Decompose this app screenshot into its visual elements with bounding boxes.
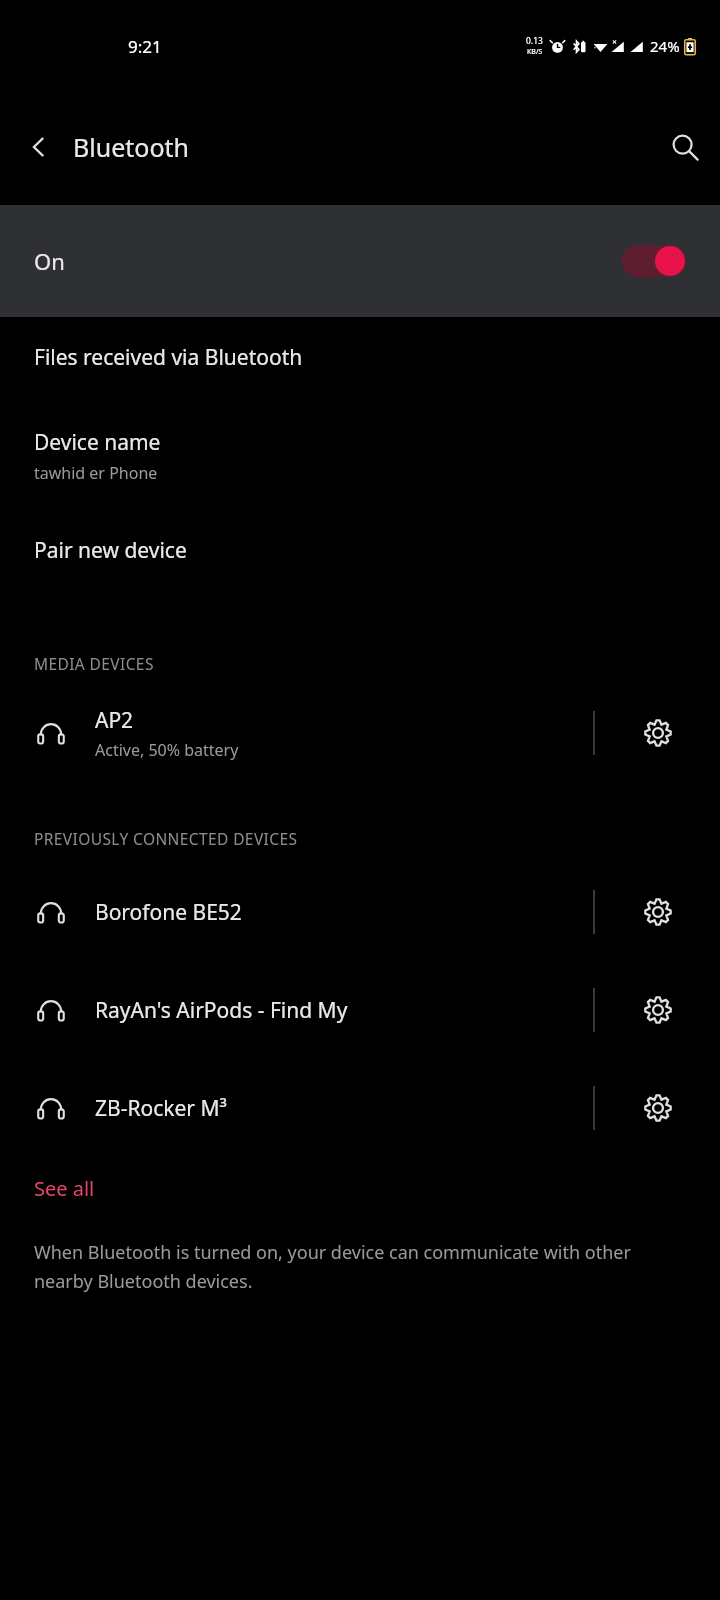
button[interactable]: ZB-Rocker M³ bbox=[0, 1071, 593, 1145]
staticText: AP2 bbox=[95, 706, 134, 735]
button[interactable]: Settings for RayAn's AirPods - Find My bbox=[595, 973, 720, 1047]
button[interactable]: Search bbox=[650, 118, 720, 176]
button[interactable]: On bbox=[0, 205, 720, 317]
staticText: KB/S bbox=[527, 47, 543, 57]
staticText: 0.13 bbox=[526, 35, 543, 47]
staticText: See all bbox=[34, 1175, 95, 1202]
staticText: RayAn's AirPods - Find My bbox=[95, 996, 348, 1025]
button[interactable]: RayAn's AirPods - Find My bbox=[0, 973, 593, 1047]
staticText: Bluetooth bbox=[73, 130, 190, 164]
button[interactable]: See all bbox=[0, 1167, 129, 1210]
button[interactable]: Files received via Bluetooth bbox=[0, 339, 720, 376]
other: Back bbox=[24, 132, 54, 162]
staticText: Device name bbox=[34, 428, 161, 457]
button[interactable]: Settings for AP2 bbox=[595, 696, 720, 770]
staticText: PREVIOUSLY CONNECTED DEVICES bbox=[34, 828, 298, 849]
button[interactable]: Back bbox=[0, 120, 206, 174]
staticText: When Bluetooth is turned on, your device… bbox=[34, 1240, 670, 1293]
staticText: On bbox=[34, 246, 65, 276]
staticText: 9:21 bbox=[128, 35, 162, 58]
staticText: Borofone BE52 bbox=[95, 898, 242, 927]
button[interactable]: Borofone BE52 bbox=[0, 875, 593, 949]
staticText: ZB-Rocker M³ bbox=[95, 1094, 227, 1123]
staticText: Active, 50% battery bbox=[95, 739, 239, 761]
button[interactable]: AP2 bbox=[0, 696, 593, 770]
button[interactable]: Pair new device bbox=[0, 532, 720, 569]
button[interactable]: Settings for Borofone BE52 bbox=[595, 875, 720, 949]
button[interactable]: Device name bbox=[0, 424, 720, 488]
staticText: MEDIA DEVICES bbox=[34, 653, 154, 674]
staticText: tawhid er Phone bbox=[34, 462, 158, 484]
staticText: Files received via Bluetooth bbox=[34, 343, 303, 372]
staticText: 24% bbox=[650, 36, 680, 56]
button[interactable]: Settings for ZB-Rocker M³ bbox=[595, 1071, 720, 1145]
staticText: Pair new device bbox=[34, 536, 187, 565]
